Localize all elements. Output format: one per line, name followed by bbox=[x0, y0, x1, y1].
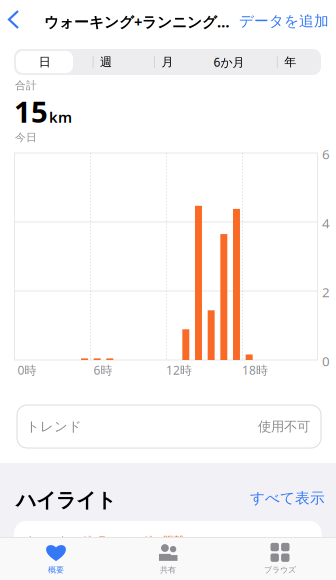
staticText: 使用不可 bbox=[258, 418, 310, 435]
staticText: ハイライト bbox=[16, 488, 116, 513]
staticText: 0 bbox=[322, 352, 330, 370]
staticText: すべて表示 bbox=[250, 489, 325, 507]
staticText: 15 bbox=[14, 92, 48, 131]
staticText: データを追加 bbox=[239, 12, 329, 30]
staticText: 2 bbox=[322, 283, 330, 301]
staticText: 共有 bbox=[160, 565, 176, 575]
staticText: 年 bbox=[284, 55, 296, 69]
staticText: 12時 bbox=[166, 362, 192, 378]
staticText: ブラウズ bbox=[264, 565, 296, 575]
button[interactable]: 戻る bbox=[0, 0, 32, 40]
staticText: 6 bbox=[322, 145, 330, 163]
button[interactable]: 共有 bbox=[112, 537, 224, 580]
button[interactable]: 年 bbox=[260, 49, 321, 75]
staticText: ウォーキング+ランニング… bbox=[44, 12, 230, 31]
staticText: 日 bbox=[39, 55, 51, 69]
staticText: トレンド bbox=[26, 418, 82, 435]
staticText: km bbox=[49, 107, 72, 127]
staticText: 18時 bbox=[242, 362, 268, 378]
staticText: 合計 bbox=[15, 79, 37, 92]
staticText: 週 bbox=[100, 55, 112, 69]
button[interactable]: すべて表示 bbox=[250, 484, 325, 512]
staticText: ウォーキング+ランニングの距離 bbox=[25, 533, 185, 547]
button[interactable]: ブラウズ bbox=[224, 537, 336, 580]
staticText: 6か月 bbox=[213, 54, 244, 70]
staticText: 4 bbox=[322, 214, 330, 232]
staticText: 今日 bbox=[15, 131, 37, 144]
staticText: 概要 bbox=[48, 565, 64, 575]
button[interactable]: 月 bbox=[137, 49, 198, 75]
button[interactable]: 週 bbox=[75, 49, 137, 75]
button[interactable]: トレンド bbox=[17, 405, 321, 448]
staticText: 0時 bbox=[17, 362, 36, 378]
staticText: 月 bbox=[161, 55, 173, 69]
button[interactable]: 6か月 bbox=[198, 49, 260, 75]
button[interactable]: 日 bbox=[14, 49, 75, 75]
staticText: 6時 bbox=[93, 362, 112, 378]
button[interactable]: データを追加 bbox=[239, 6, 329, 36]
button[interactable]: 概要 bbox=[0, 537, 112, 580]
